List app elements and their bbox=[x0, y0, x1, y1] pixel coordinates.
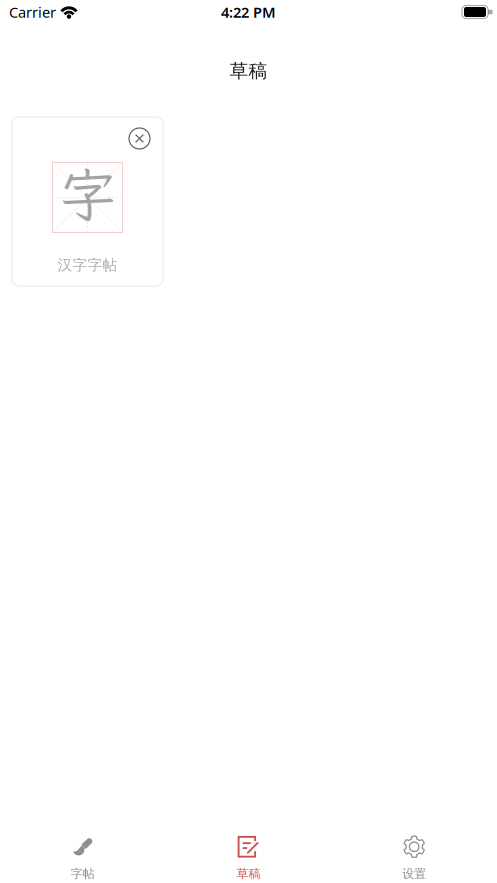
staticText: Carrier bbox=[9, 2, 56, 22]
button[interactable]: 字帖 bbox=[0, 823, 166, 883]
button[interactable]: 设置 bbox=[331, 823, 497, 883]
staticText: 字 bbox=[59, 156, 116, 232]
staticText: 设置 bbox=[402, 866, 426, 881]
staticText: 字帖 bbox=[71, 866, 95, 881]
button[interactable]: 草稿 bbox=[166, 823, 331, 883]
staticText: 草稿 bbox=[229, 59, 267, 82]
button[interactable]: 删除草稿 bbox=[125, 124, 154, 153]
staticText: 草稿 bbox=[236, 866, 260, 881]
staticText: 汉字字帖 bbox=[57, 256, 117, 274]
staticText: 4:22 PM bbox=[221, 2, 276, 22]
